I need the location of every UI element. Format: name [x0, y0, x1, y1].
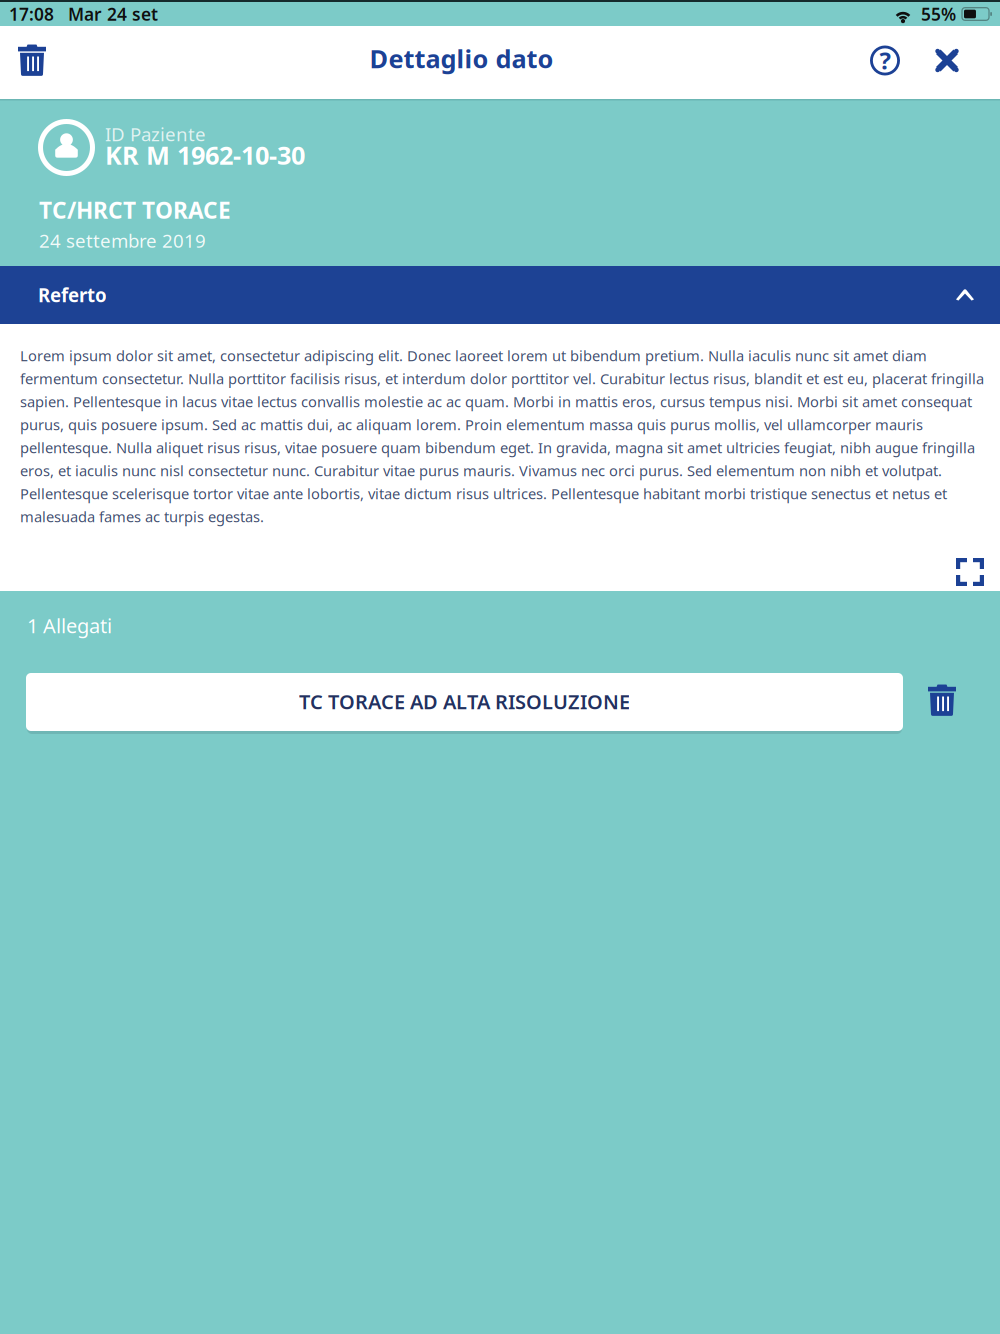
staticText: ?	[879, 44, 890, 76]
staticText: KR M 1962-10-30	[105, 138, 305, 172]
staticText: purus, quis posuere ipsum. Sed ac mattis…	[20, 415, 923, 434]
staticText: malesuada fames ac turpis egestas.	[20, 507, 264, 526]
staticText: pellentesque. Nulla aliquet risus risus,…	[20, 438, 975, 457]
staticText: Referto	[38, 283, 107, 307]
staticText: Dettaglio dato	[369, 42, 553, 75]
button[interactable]: Schermo intero	[942, 553, 1000, 591]
staticText: TC/HRCT TORACE	[39, 195, 231, 225]
staticText: Mar 24 set	[68, 2, 158, 25]
staticText: ID Paziente	[105, 122, 206, 146]
staticText: Pellentesque scelerisque tortor vitae an…	[20, 484, 947, 503]
staticText: 24 settembre 2019	[39, 228, 206, 253]
button[interactable]: Chiudi	[918, 38, 1000, 86]
staticText: 17:08	[9, 2, 54, 25]
button[interactable]: Aiuto	[856, 38, 918, 86]
staticText: Lorem ipsum dolor sit amet, consectetur …	[20, 346, 927, 365]
button[interactable]: Elimina allegato	[903, 677, 973, 729]
staticText: eros, et iaculis nunc nisl consectetur n…	[20, 461, 942, 480]
staticText: sapien. Pellentesque in lacus vitae lect…	[20, 392, 972, 411]
button[interactable]: Referto	[0, 266, 1000, 324]
staticText: TC TORACE AD ALTA RISOLUZIONE	[299, 688, 630, 715]
staticText: fermentum consectetur. Nulla porttitor f…	[20, 369, 984, 388]
staticText: 55%	[921, 2, 956, 25]
button[interactable]: TC TORACE AD ALTA RISOLUZIONE	[26, 673, 903, 734]
staticText: 1 Allegati	[27, 612, 112, 639]
button[interactable]: Elimina	[0, 36, 62, 88]
